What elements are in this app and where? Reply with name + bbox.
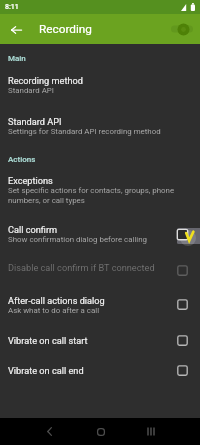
button[interactable]: Call confirm checkbox [176, 227, 200, 245]
button[interactable]: Recent apps [137, 418, 164, 445]
staticText: Actions [8, 155, 36, 164]
button[interactable]: Disable call confirm if BT connected [0, 257, 200, 290]
button[interactable]: Call confirm [0, 219, 200, 257]
button[interactable]: Vibrate on call start [0, 330, 200, 360]
staticText: Show confirmation dialog before calling [8, 235, 148, 244]
staticText: Recording method [8, 75, 83, 86]
button[interactable]: Standard API [0, 111, 200, 145]
staticText: Main [8, 54, 26, 63]
staticText: Set specific actions for contacts, group… [8, 186, 196, 205]
staticText: Settings for Standard API recording meth… [8, 127, 161, 136]
staticText: Vibrate on call end [8, 365, 84, 376]
staticText: Call confirm [8, 224, 58, 235]
staticText: Vibrate on call start [8, 335, 88, 346]
staticText: 8:11 [5, 3, 19, 11]
staticText: Exceptions [8, 175, 53, 186]
button[interactable]: Vibrate on call end [0, 360, 200, 390]
button[interactable]: Exceptions [0, 170, 200, 219]
button[interactable]: Back [36, 418, 63, 445]
button[interactable]: Home [87, 418, 114, 445]
button[interactable]: Enable recording [171, 19, 195, 39]
button[interactable]: Navigate up [6, 19, 27, 40]
button[interactable]: After-call actions dialog [0, 290, 200, 330]
staticText: Standard API [8, 86, 54, 95]
staticText: Ask what to do after a call [8, 306, 100, 315]
staticText: Disable call confirm if BT connected [8, 262, 155, 273]
staticText: Standard API [8, 116, 62, 127]
staticText: After-call actions dialog [8, 295, 105, 306]
button[interactable]: Recording method [0, 70, 200, 111]
staticText: Recording [39, 22, 92, 36]
